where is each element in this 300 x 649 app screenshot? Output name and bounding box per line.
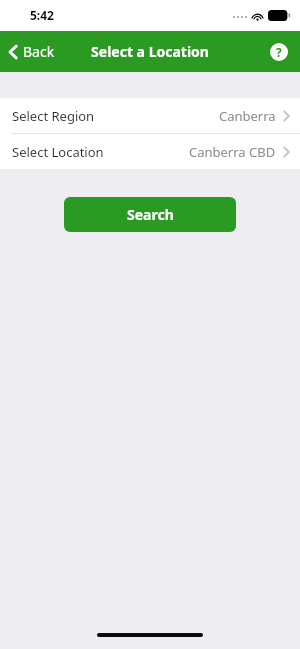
staticText: Select Region bbox=[12, 107, 95, 125]
button[interactable]: Search bbox=[64, 197, 236, 232]
staticText: Back bbox=[23, 42, 55, 61]
staticText: Search bbox=[127, 205, 174, 224]
staticText: Canberra CBD bbox=[189, 143, 276, 161]
button[interactable]: Back bbox=[8, 42, 55, 61]
staticText: Canberra bbox=[219, 107, 276, 125]
staticText: 5:42 bbox=[30, 7, 54, 23]
staticText: ? bbox=[276, 44, 282, 60]
button[interactable]: Help bbox=[264, 37, 294, 67]
staticText: Select Location bbox=[12, 143, 104, 161]
button[interactable]: Select Location bbox=[0, 134, 300, 169]
button[interactable]: Select Region bbox=[0, 98, 300, 133]
staticText: Select a Location bbox=[91, 42, 209, 61]
